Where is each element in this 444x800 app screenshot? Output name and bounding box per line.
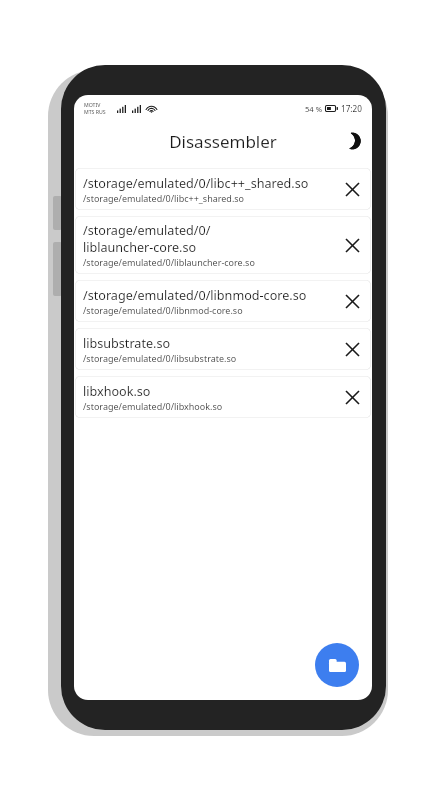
button[interactable]: /storage/emulated/0/ [75,216,371,274]
staticText: MTS RUS [84,108,106,115]
staticText: /storage/emulated/0/libsubstrate.so [83,352,237,364]
staticText: /storage/emulated/0/ [83,222,211,239]
button[interactable]: Open file [315,643,359,687]
staticText: /storage/emulated/0/liblauncher-core.so [83,256,255,268]
staticText: liblauncher-core.so [83,239,197,256]
staticText: libsubstrate.so [83,335,171,352]
staticText: MOTIV [84,101,101,108]
button[interactable]: libsubstrate.so [75,328,371,370]
staticText: /storage/emulated/0/libc++_shared.so [83,192,245,204]
button[interactable]: Remove item [337,174,367,204]
button[interactable]: /storage/emulated/0/libc++_shared.so [75,168,371,210]
staticText: /storage/emulated/0/libnmod-core.so [83,304,243,316]
staticText: /storage/emulated/0/libc++_shared.so [83,175,309,192]
staticText: 54 % [305,104,322,114]
button[interactable]: libxhook.so [75,376,371,418]
staticText: /storage/emulated/0/libnmod-core.so [83,287,307,304]
staticText: Disassembler [169,130,277,153]
button[interactable]: Remove item [337,230,367,260]
button[interactable]: Toggle dark mode [335,126,365,156]
button[interactable]: Remove item [337,286,367,316]
button[interactable]: Remove item [337,334,367,364]
button[interactable]: /storage/emulated/0/libnmod-core.so [75,280,371,322]
staticText: /storage/emulated/0/libxhook.so [83,400,223,412]
button[interactable]: Remove item [337,382,367,412]
staticText: libxhook.so [83,383,151,400]
staticText: 17:20 [341,103,362,114]
